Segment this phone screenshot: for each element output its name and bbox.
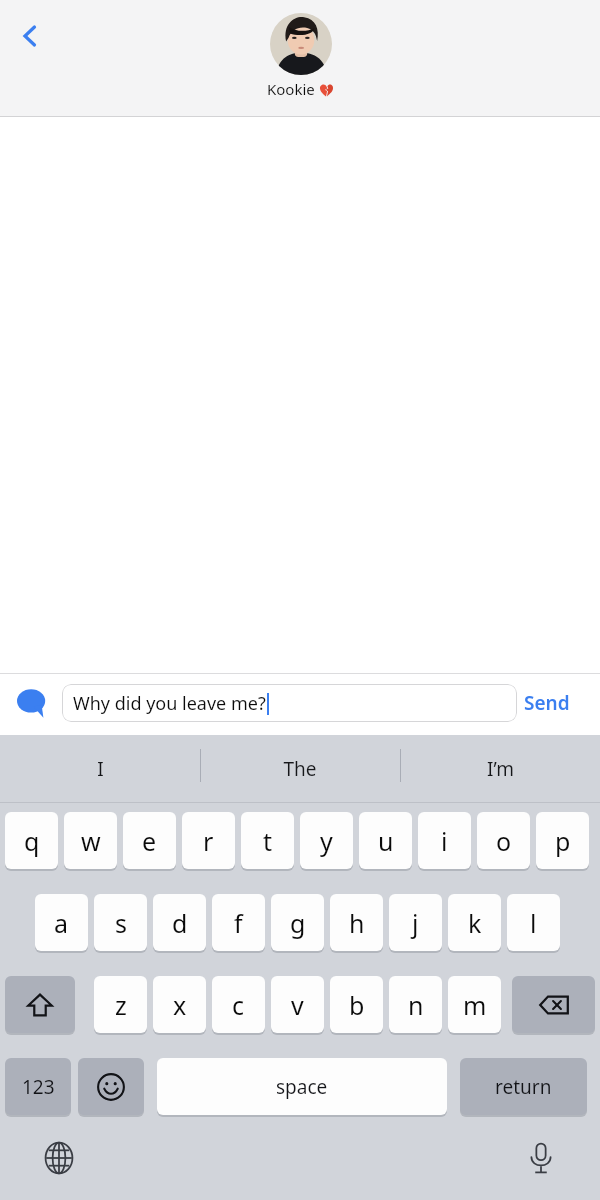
other: Backspace bbox=[512, 976, 595, 1035]
button[interactable]: t bbox=[241, 812, 294, 869]
staticText: y bbox=[320, 824, 333, 858]
button[interactable]: n bbox=[389, 976, 442, 1033]
staticText: r bbox=[203, 824, 214, 858]
button[interactable]: x bbox=[153, 976, 206, 1033]
staticText: x bbox=[173, 988, 187, 1022]
button[interactable]: Apps bbox=[12, 683, 52, 723]
staticText: Why did you leave me? bbox=[73, 691, 266, 716]
staticText: e bbox=[142, 824, 157, 858]
staticText: b bbox=[349, 988, 365, 1022]
staticText: o bbox=[496, 824, 512, 858]
button[interactable]: Back bbox=[6, 12, 54, 60]
button[interactable] bbox=[5, 976, 75, 1033]
button[interactable]: Why did you leave me? bbox=[62, 684, 517, 722]
button[interactable]: Send bbox=[524, 684, 590, 722]
staticText: q bbox=[24, 824, 40, 858]
staticText: Kookie bbox=[267, 79, 315, 99]
button[interactable]: j bbox=[389, 894, 442, 951]
staticText: 123 bbox=[22, 1074, 55, 1100]
staticText: h bbox=[349, 906, 365, 940]
button[interactable]: q bbox=[5, 812, 58, 869]
staticText: return bbox=[495, 1074, 552, 1100]
button[interactable]: d bbox=[153, 894, 206, 951]
button[interactable]: space bbox=[157, 1058, 447, 1115]
staticText: d bbox=[172, 906, 188, 940]
staticText: s bbox=[115, 906, 127, 940]
button[interactable]: m bbox=[448, 976, 501, 1033]
button[interactable]: f bbox=[212, 894, 265, 951]
staticText: a bbox=[54, 906, 69, 940]
staticText: z bbox=[115, 988, 127, 1022]
staticText: m bbox=[463, 988, 487, 1022]
button[interactable] bbox=[512, 976, 595, 1033]
staticText: i bbox=[441, 824, 448, 858]
staticText: n bbox=[408, 988, 424, 1022]
button[interactable]: p bbox=[536, 812, 589, 869]
button[interactable]: Kookie bbox=[267, 13, 334, 99]
button[interactable]: I’m bbox=[400, 735, 600, 803]
button[interactable]: k bbox=[448, 894, 501, 951]
button[interactable]: g bbox=[271, 894, 324, 951]
button[interactable]: s bbox=[94, 894, 147, 951]
staticText: p bbox=[555, 824, 571, 858]
staticText: l bbox=[530, 906, 537, 940]
button[interactable]: b bbox=[330, 976, 383, 1033]
button[interactable]: w bbox=[64, 812, 117, 869]
staticText: The bbox=[283, 756, 317, 782]
button[interactable]: a bbox=[35, 894, 88, 951]
button[interactable]: e bbox=[123, 812, 176, 869]
staticText: g bbox=[290, 906, 306, 940]
staticText: I’m bbox=[487, 756, 514, 782]
button[interactable]: u bbox=[359, 812, 412, 869]
button[interactable]: o bbox=[477, 812, 530, 869]
other: Emoji bbox=[78, 1058, 144, 1117]
staticText: v bbox=[291, 988, 304, 1022]
staticText: I bbox=[97, 756, 104, 782]
button[interactable]: The bbox=[200, 735, 400, 803]
staticText: space bbox=[276, 1074, 328, 1100]
staticText: k bbox=[468, 906, 482, 940]
staticText: Send bbox=[524, 690, 570, 716]
button[interactable]: v bbox=[271, 976, 324, 1033]
staticText: f bbox=[234, 906, 243, 940]
button[interactable]: c bbox=[212, 976, 265, 1033]
button[interactable]: y bbox=[300, 812, 353, 869]
button[interactable]: l bbox=[507, 894, 560, 951]
button[interactable]: r bbox=[182, 812, 235, 869]
button[interactable]: Dictate bbox=[518, 1135, 564, 1181]
button[interactable]: 123 bbox=[5, 1058, 71, 1115]
button[interactable]: I bbox=[0, 735, 200, 803]
staticText: j bbox=[412, 906, 419, 940]
button[interactable] bbox=[78, 1058, 144, 1115]
button[interactable]: return bbox=[460, 1058, 587, 1115]
staticText: c bbox=[232, 988, 245, 1022]
staticText: w bbox=[81, 824, 101, 858]
staticText: t bbox=[263, 824, 273, 858]
button[interactable]: i bbox=[418, 812, 471, 869]
button[interactable]: h bbox=[330, 894, 383, 951]
button[interactable]: Change keyboard language bbox=[36, 1135, 82, 1181]
other: Shift bbox=[5, 976, 75, 1035]
button[interactable]: z bbox=[94, 976, 147, 1033]
staticText: u bbox=[378, 824, 394, 858]
